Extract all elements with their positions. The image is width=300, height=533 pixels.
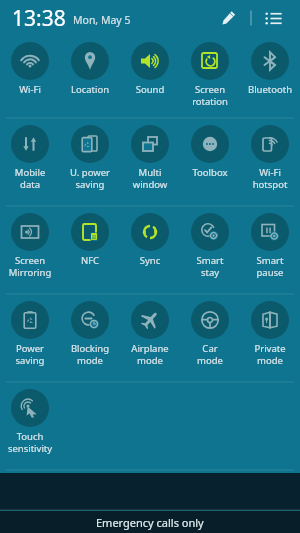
button[interactable]: Bluetooth <box>241 36 299 118</box>
staticText: Private mode <box>241 342 299 366</box>
staticText: Screen Mirroring <box>1 254 59 278</box>
staticText: Sound <box>121 83 179 96</box>
staticText: Mobile data <box>1 166 59 190</box>
button[interactable]: Wi-Fi <box>1 36 59 118</box>
button[interactable]: Wi-Fi hotspot <box>241 119 299 206</box>
button[interactable]: Toolbox <box>181 119 239 206</box>
staticText: NFC <box>61 254 119 267</box>
staticText: Sync <box>121 254 179 267</box>
button[interactable]: Smart stay <box>181 207 239 294</box>
staticText: Mon, May 5 <box>73 13 131 27</box>
button[interactable]: Private mode <box>241 295 299 382</box>
staticText: Car mode <box>181 342 239 366</box>
button[interactable]: Screen Mirroring <box>1 207 59 294</box>
staticText: Screen rotation <box>181 83 239 107</box>
button[interactable]: NFC <box>61 207 119 294</box>
button[interactable]: Edit <box>214 3 244 33</box>
staticText: U. power saving <box>61 166 119 190</box>
staticText: Touch sensitivity <box>1 430 59 454</box>
button[interactable]: Airplane mode <box>121 295 179 382</box>
button[interactable]: Sync <box>121 207 179 294</box>
button[interactable]: Sound <box>121 36 179 118</box>
staticText: Smart pause <box>241 254 299 278</box>
staticText: Blocking mode <box>61 342 119 366</box>
staticText: Location <box>61 83 119 96</box>
staticText: Bluetooth <box>241 83 299 96</box>
staticText: Airplane mode <box>121 342 179 366</box>
staticText: Wi-Fi hotspot <box>241 166 299 190</box>
button[interactable]: Notifications list <box>258 3 288 33</box>
staticText: Smart stay <box>181 254 239 278</box>
button[interactable]: Blocking mode <box>61 295 119 382</box>
button[interactable]: Car mode <box>181 295 239 382</box>
button[interactable]: U. power saving <box>61 119 119 206</box>
button[interactable]: Mobile data <box>1 119 59 206</box>
button[interactable]: Location <box>61 36 119 118</box>
staticText: Emergency calls only <box>96 515 204 530</box>
button[interactable]: Screen rotation <box>181 36 239 118</box>
staticText: Power saving <box>1 342 59 366</box>
button[interactable]: Multi window <box>121 119 179 206</box>
button[interactable]: Smart pause <box>241 207 299 294</box>
button[interactable]: Touch sensitivity <box>1 383 59 470</box>
staticText: Wi-Fi <box>1 83 59 96</box>
staticText: Multi window <box>121 166 179 190</box>
staticText: Toolbox <box>181 166 239 179</box>
button[interactable]: Power saving <box>1 295 59 382</box>
staticText: 13:38 <box>12 4 66 33</box>
